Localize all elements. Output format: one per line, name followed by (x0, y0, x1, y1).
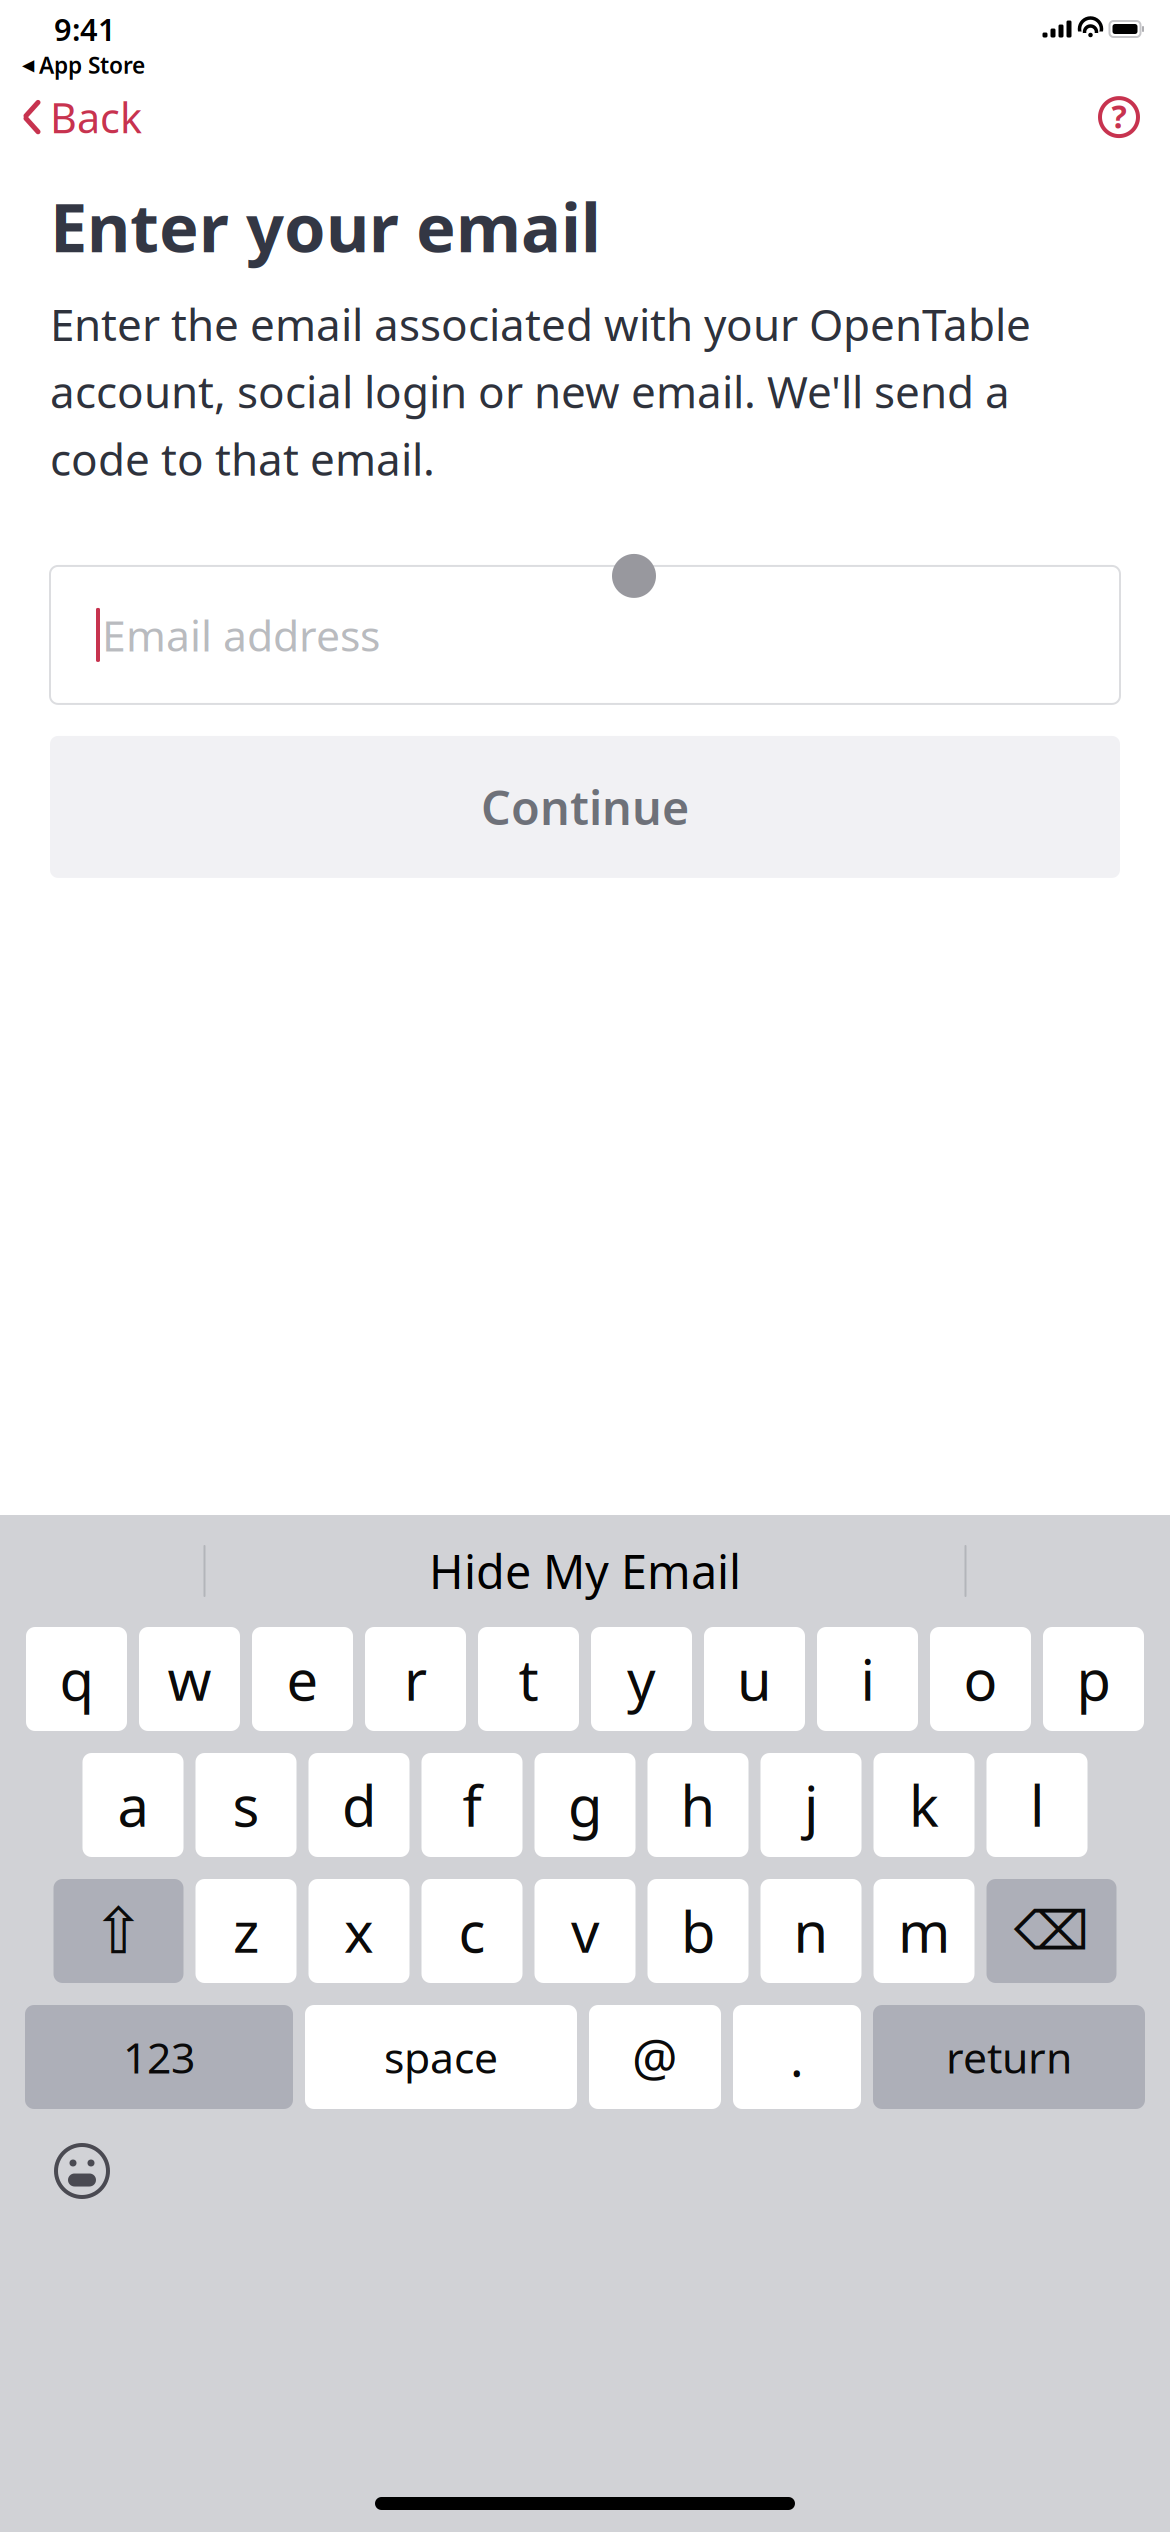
button[interactable]: e (252, 1627, 353, 1731)
staticText: s (232, 1768, 259, 1842)
staticText: @ (632, 2023, 678, 2091)
staticText: Back (50, 90, 142, 145)
button[interactable]: b (647, 1879, 748, 1983)
staticText: o (963, 1642, 997, 1716)
staticText: 9:41 (54, 9, 116, 49)
staticText: v (571, 1894, 599, 1968)
staticText: ? (1111, 95, 1126, 137)
staticText: c (458, 1894, 485, 1968)
button[interactable]: Hide My Email (409, 1528, 761, 1614)
button[interactable]: return (873, 2005, 1145, 2109)
button[interactable]: Delete (986, 1879, 1116, 1983)
staticText: m (898, 1894, 950, 1968)
staticText: j (804, 1768, 818, 1842)
button[interactable]: r (365, 1627, 466, 1731)
button[interactable]: l (986, 1753, 1087, 1857)
button[interactable]: u (704, 1627, 805, 1731)
button[interactable]: c (421, 1879, 522, 1983)
staticText: h (680, 1768, 715, 1842)
staticText: z (233, 1894, 259, 1968)
button[interactable]: Back (0, 82, 142, 153)
button[interactable]: 123 (25, 2005, 293, 2109)
staticText: Enter your email (50, 182, 601, 271)
button[interactable]: Help (1096, 86, 1170, 148)
button[interactable]: @ (589, 2005, 721, 2109)
staticText: ⌫ (1014, 1901, 1089, 1961)
staticText: y (627, 1642, 656, 1716)
button[interactable]: x (308, 1879, 409, 1983)
button[interactable]: j (760, 1753, 861, 1857)
staticText: k (909, 1768, 939, 1842)
button[interactable]: Shift (53, 1879, 183, 1983)
button[interactable]: k (873, 1753, 974, 1857)
staticText: g (568, 1768, 602, 1842)
staticText: Continue (481, 776, 689, 838)
button[interactable]: a (82, 1753, 183, 1857)
button[interactable]: p (1043, 1627, 1144, 1731)
staticText: 123 (123, 2029, 195, 2085)
button[interactable]: Continue (50, 736, 1120, 878)
button[interactable]: v (534, 1879, 635, 1983)
button[interactable]: w (139, 1627, 240, 1731)
button[interactable]: o (930, 1627, 1031, 1731)
staticText: n (793, 1894, 828, 1968)
staticText: ⇧ (91, 1895, 145, 1967)
staticText: i (860, 1642, 874, 1716)
button[interactable]: h (647, 1753, 748, 1857)
button[interactable]: Email address (50, 566, 1120, 704)
staticText: d (342, 1768, 376, 1842)
button[interactable]: s (195, 1753, 296, 1857)
staticText: r (404, 1642, 427, 1716)
button[interactable]: Emoji keyboard (40, 2129, 124, 2213)
staticText: Enter the email associated with your Ope… (50, 295, 1031, 488)
staticText: e (286, 1642, 318, 1716)
staticText: Email address (102, 607, 380, 663)
staticText: w (167, 1642, 211, 1716)
staticText: ◀ (22, 56, 34, 74)
button[interactable]: g (534, 1753, 635, 1857)
staticText: App Store (39, 50, 145, 80)
staticText: space (384, 2029, 498, 2085)
staticText: u (737, 1642, 772, 1716)
staticText: t (518, 1642, 538, 1716)
button[interactable]: z (195, 1879, 296, 1983)
staticText: x (344, 1894, 374, 1968)
staticText: q (59, 1642, 93, 1716)
staticText: return (946, 2029, 1072, 2085)
staticText: f (462, 1768, 481, 1842)
button[interactable]: f (421, 1753, 522, 1857)
button[interactable]: m (873, 1879, 974, 1983)
button[interactable]: d (308, 1753, 409, 1857)
button[interactable]: q (26, 1627, 127, 1731)
staticText: p (1076, 1642, 1110, 1716)
staticText: a (117, 1768, 148, 1842)
staticText: Hide My Email (429, 1540, 741, 1602)
staticText: b (681, 1894, 715, 1968)
button[interactable]: y (591, 1627, 692, 1731)
button[interactable]: t (478, 1627, 579, 1731)
staticText: . (790, 2023, 804, 2091)
button[interactable]: . (733, 2005, 861, 2109)
button[interactable]: n (760, 1879, 861, 1983)
button[interactable]: space (305, 2005, 577, 2109)
staticText: l (1030, 1768, 1044, 1842)
button[interactable]: i (817, 1627, 918, 1731)
